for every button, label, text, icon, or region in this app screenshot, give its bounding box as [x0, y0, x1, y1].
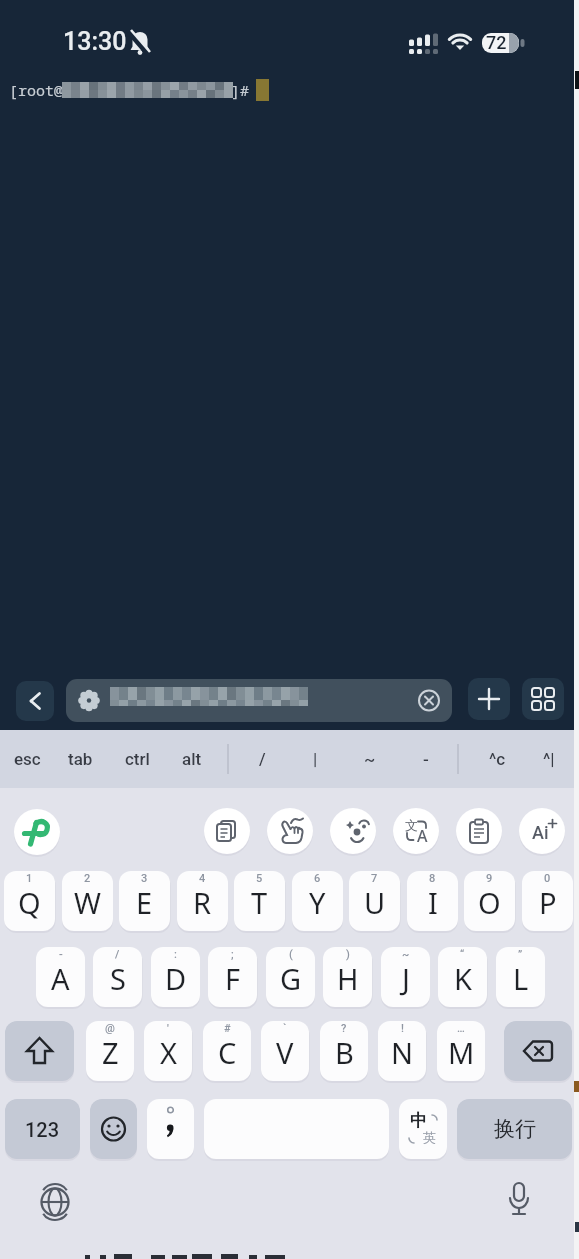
button[interactable] — [468, 678, 510, 720]
button[interactable] — [456, 808, 502, 854]
button[interactable]: W — [62, 871, 113, 931]
staticText: ` — [283, 1022, 287, 1035]
staticText: 72 — [486, 32, 507, 53]
staticText: ; — [231, 948, 234, 961]
button[interactable] — [522, 678, 564, 720]
button[interactable]: ctrl — [113, 730, 161, 788]
button[interactable]: H — [323, 947, 372, 1007]
button[interactable]: 文 — [393, 808, 439, 854]
staticText: A — [417, 825, 428, 847]
button[interactable]: O — [464, 871, 515, 931]
staticText: 2 — [84, 872, 91, 885]
staticText: 4 — [199, 872, 206, 885]
staticText: F — [225, 959, 241, 998]
button[interactable]: V — [261, 1021, 309, 1081]
staticText: 123 — [25, 1118, 60, 1141]
button[interactable]: esc — [3, 730, 51, 788]
button[interactable]: - — [402, 730, 450, 788]
staticText: / — [115, 948, 120, 961]
button[interactable]: 换行 — [457, 1099, 572, 1159]
button[interactable]: F — [208, 947, 257, 1007]
button[interactable] — [90, 1099, 137, 1159]
button[interactable]: P — [522, 871, 573, 931]
staticText: “ — [460, 948, 465, 961]
staticText: Ai — [532, 822, 549, 843]
button[interactable] — [494, 1175, 544, 1225]
button[interactable]: L — [496, 947, 545, 1007]
staticText: ( — [289, 948, 293, 961]
staticText: tab — [68, 749, 93, 769]
button[interactable]: M — [437, 1021, 485, 1081]
staticText: D — [165, 959, 187, 998]
staticText: 0 — [544, 872, 551, 885]
button[interactable]: R — [177, 871, 228, 931]
button[interactable]: / — [238, 730, 286, 788]
button[interactable]: Q — [4, 871, 55, 931]
button[interactable]: U — [349, 871, 400, 931]
staticText: ^| — [543, 749, 555, 769]
staticText: 文 — [405, 817, 418, 833]
button[interactable]: B — [320, 1021, 368, 1081]
button[interactable] — [5, 1021, 74, 1081]
button[interactable]: T — [234, 871, 285, 931]
staticText: Y — [309, 883, 326, 922]
staticText: 5 — [256, 872, 263, 885]
button[interactable] — [16, 681, 54, 721]
staticText: - — [59, 948, 63, 961]
staticText: ^c — [489, 749, 506, 769]
staticText: ) — [346, 948, 350, 961]
button[interactable]: D — [151, 947, 200, 1007]
staticText: V — [276, 1033, 294, 1072]
button[interactable]: ^| — [525, 730, 573, 788]
button[interactable]: Z — [86, 1021, 134, 1081]
staticText: - — [423, 749, 429, 769]
button[interactable]: N — [378, 1021, 426, 1081]
staticText: ? — [341, 1022, 347, 1035]
button[interactable]: ^c — [473, 730, 521, 788]
button[interactable] — [204, 808, 250, 854]
button[interactable]: Y — [292, 871, 343, 931]
button[interactable]: 123 — [5, 1099, 80, 1159]
staticText: / — [259, 749, 266, 769]
button[interactable] — [504, 1021, 572, 1081]
button[interactable]: G — [266, 947, 315, 1007]
button[interactable] — [267, 808, 313, 854]
button[interactable] — [14, 809, 60, 855]
button[interactable] — [330, 808, 376, 854]
staticText: ~ — [364, 749, 376, 769]
button[interactable]: J — [381, 947, 430, 1007]
button[interactable] — [30, 1177, 80, 1227]
button[interactable]: C — [203, 1021, 251, 1081]
button[interactable]: | — [291, 730, 339, 788]
staticText: S — [110, 959, 126, 998]
button[interactable]: 中 — [399, 1099, 447, 1159]
button[interactable]: Ai — [519, 808, 565, 854]
staticText: 3 — [141, 872, 148, 885]
button[interactable]: I — [407, 871, 458, 931]
staticText: 7 — [371, 872, 378, 885]
staticText: 中 — [410, 1110, 427, 1131]
button[interactable]: alt — [168, 730, 216, 788]
staticText: 13:30 — [63, 27, 127, 56]
button[interactable]: S — [93, 947, 142, 1007]
staticText: # — [224, 1022, 231, 1035]
button[interactable]: X — [144, 1021, 192, 1081]
button[interactable]: A — [36, 947, 85, 1007]
staticText: Z — [102, 1033, 119, 1072]
button[interactable] — [147, 1099, 194, 1159]
button[interactable] — [66, 679, 452, 722]
staticText: W — [74, 883, 101, 922]
staticText: [root@ — [9, 80, 64, 100]
staticText: J — [402, 959, 410, 998]
staticText: I — [428, 883, 438, 922]
staticText: : — [174, 948, 177, 961]
staticText: 8 — [429, 872, 436, 885]
button[interactable]: K — [438, 947, 487, 1007]
button[interactable]: ~ — [346, 730, 394, 788]
button[interactable]: E — [119, 871, 170, 931]
staticText: E — [136, 883, 153, 922]
staticText: P — [539, 883, 557, 922]
staticText: ~ — [402, 948, 410, 961]
button[interactable]: tab — [56, 730, 104, 788]
